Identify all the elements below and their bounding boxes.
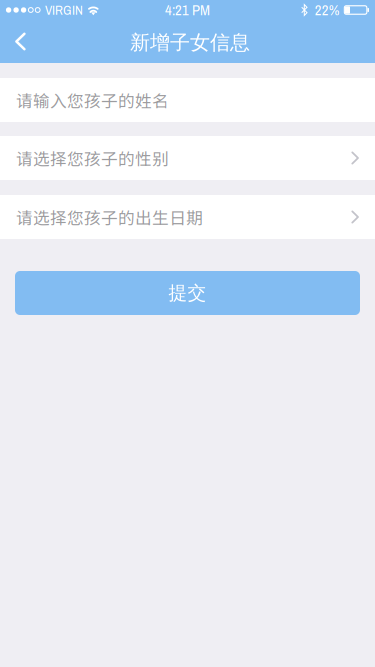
- button[interactable]: Back: [0, 20, 40, 63]
- staticText: 请选择您孩子的出生日期: [16, 205, 203, 229]
- staticText: 请选择您孩子的性别: [16, 146, 169, 170]
- staticText: 提交: [168, 281, 206, 304]
- button[interactable]: 提交: [15, 271, 360, 315]
- staticText: 22%: [315, 0, 340, 20]
- button[interactable]: 请输入您孩子的姓名: [0, 78, 375, 122]
- button[interactable]: 请选择您孩子的性别: [0, 136, 375, 180]
- staticText: 请输入您孩子的姓名: [16, 88, 169, 112]
- staticText: 新增子女信息: [130, 30, 250, 55]
- staticText: VIRGIN: [45, 1, 83, 19]
- staticText: 4:21 PM: [165, 0, 210, 20]
- button[interactable]: 请选择您孩子的出生日期: [0, 195, 375, 239]
